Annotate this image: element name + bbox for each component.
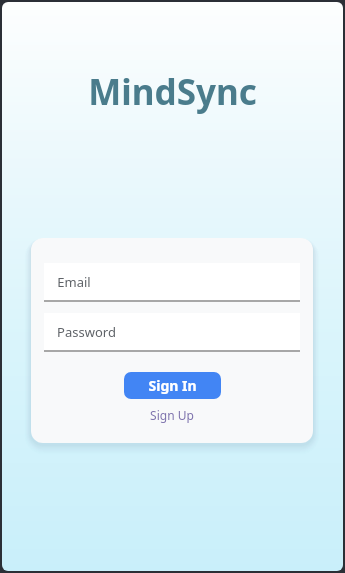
button[interactable]: Sign In <box>124 372 221 399</box>
staticText: Email <box>57 273 91 291</box>
button[interactable]: Email <box>44 263 300 302</box>
staticText: Sign In <box>148 376 197 395</box>
button[interactable]: Sign Up <box>142 405 202 425</box>
button[interactable]: Password <box>44 313 300 352</box>
staticText: Sign Up <box>150 407 194 423</box>
staticText: MindSync <box>88 68 257 116</box>
staticText: Password <box>57 323 116 341</box>
